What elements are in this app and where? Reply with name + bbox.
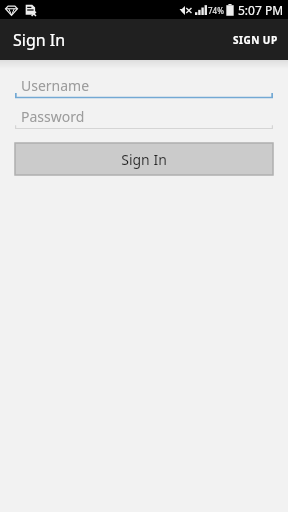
staticText: 5:07 PM [238, 2, 284, 18]
staticText: Username [21, 76, 90, 95]
button[interactable]: SIGN UP [223, 19, 288, 60]
staticText: SIGN UP [233, 33, 278, 47]
staticText: Sign In [121, 150, 167, 169]
button[interactable]: Password [15, 105, 273, 130]
staticText: Password [21, 107, 85, 126]
staticText: Sign In [13, 29, 66, 51]
staticText: 74% [208, 5, 224, 16]
button[interactable]: Username [15, 74, 273, 99]
button[interactable]: Sign In [15, 143, 273, 175]
